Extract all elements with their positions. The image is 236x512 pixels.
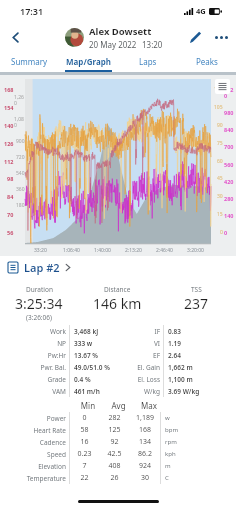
staticText: 1,189: [130, 413, 160, 423]
staticText: 900: [16, 138, 25, 145]
staticText: 180: [16, 202, 25, 209]
button[interactable]: More options: [208, 24, 234, 50]
staticText: 1:06:40: [63, 247, 80, 254]
staticText: 1,260: [14, 94, 25, 107]
staticText: 45: [217, 175, 223, 182]
staticText: 2:13:20: [125, 247, 142, 254]
staticText: 924: [130, 461, 160, 471]
button[interactable]: Peaks: [177, 52, 236, 70]
staticText: 168: [130, 425, 160, 435]
button[interactable]: Edit: [182, 24, 208, 50]
staticText: 0.23: [70, 449, 99, 459]
button[interactable]: Laps: [118, 52, 177, 70]
button[interactable]: Profile photo: [65, 28, 84, 47]
staticText: 134: [130, 437, 160, 447]
staticText: 980: [224, 109, 234, 116]
staticText: 140: [4, 122, 14, 129]
staticText: El. Gain: [118, 363, 160, 372]
staticText: 2:46:40: [156, 247, 173, 254]
staticText: 90: [217, 122, 223, 129]
staticText: 540: [16, 170, 25, 177]
staticText: 360: [16, 186, 25, 193]
staticText: Lap #2: [24, 260, 60, 275]
staticText: W/kg: [118, 387, 160, 396]
staticText: Distance: [104, 285, 131, 294]
staticText: 120: [214, 86, 223, 93]
staticText: Summary: [11, 56, 48, 67]
staticText: Pw:Hr: [0, 351, 66, 360]
button[interactable]: Map/Graph: [59, 52, 118, 70]
staticText: 461 m/h: [74, 387, 118, 396]
staticText: 1120: [224, 86, 236, 99]
button[interactable]: Back: [2, 24, 28, 50]
staticText: Heart Rate: [0, 426, 66, 435]
staticText: 140: [224, 212, 234, 219]
staticText: 7: [70, 461, 99, 471]
staticText: 49.0/51.0 %: [74, 363, 118, 372]
staticText: VAM: [0, 387, 66, 396]
staticText: 125: [99, 425, 130, 435]
staticText: Elevation: [0, 462, 66, 471]
staticText: 0: [220, 229, 223, 236]
staticText: 56: [7, 229, 14, 236]
staticText: 0.4 %: [74, 375, 118, 384]
staticText: 3:20:00: [187, 247, 204, 254]
staticText: Temperature: [0, 474, 66, 483]
staticText: 720: [16, 154, 25, 161]
staticText: 26: [99, 473, 130, 483]
staticText: 13.67 %: [74, 351, 118, 360]
staticText: Laps: [139, 56, 157, 67]
staticText: 30: [130, 473, 160, 483]
staticText: IF: [118, 327, 160, 336]
staticText: 333 w: [74, 339, 118, 348]
staticText: 560: [224, 161, 234, 168]
staticText: TSS: [191, 285, 202, 294]
button[interactable]: Lap #2: [0, 256, 236, 278]
staticText: Avg: [103, 400, 134, 411]
staticText: 126: [4, 140, 14, 147]
staticText: 105: [214, 104, 223, 111]
staticText: 0: [70, 413, 99, 423]
staticText: m: [165, 462, 171, 470]
staticText: 3,468 kJ: [74, 327, 118, 336]
staticText: 1.19: [168, 339, 236, 348]
button[interactable]: Chart series options: [215, 79, 230, 94]
staticText: 2.64: [168, 351, 236, 360]
staticText: 86.2: [130, 449, 160, 459]
staticText: 84: [7, 193, 14, 200]
staticText: EF: [118, 351, 160, 360]
staticText: Min: [73, 400, 103, 411]
staticText: 60: [217, 158, 223, 165]
staticText: 146 km: [93, 294, 142, 313]
staticText: 92: [99, 437, 130, 447]
staticText: C: [165, 474, 169, 482]
staticText: 33:20: [34, 247, 47, 254]
staticText: 3.69 W/kg: [168, 387, 236, 396]
staticText: 112: [4, 158, 14, 165]
staticText: 15: [217, 211, 223, 218]
staticText: 3:25:34: [15, 294, 63, 313]
staticText: kph: [165, 450, 176, 458]
staticText: 98: [7, 175, 14, 182]
staticText: rpm: [165, 438, 177, 446]
staticText: Max: [134, 400, 164, 411]
staticText: 282: [99, 413, 130, 423]
staticText: 20 May 2022: [89, 39, 137, 50]
staticText: 1:40:00: [94, 247, 111, 254]
staticText: 1,100 m: [168, 375, 236, 384]
staticText: Alex Dowsett: [89, 25, 152, 38]
staticText: 1,080: [14, 116, 25, 129]
staticText: El. Loss: [118, 375, 160, 384]
staticText: 75: [217, 140, 223, 147]
button[interactable]: Summary: [0, 52, 59, 70]
staticText: 408: [99, 461, 130, 471]
staticText: 420: [224, 178, 234, 185]
staticText: 1,662 m: [168, 363, 236, 372]
staticText: Cadence: [0, 438, 66, 447]
staticText: 154: [4, 104, 14, 111]
staticText: bpm: [165, 426, 178, 434]
staticText: Duration: [26, 285, 53, 294]
staticText: Peaks: [196, 56, 218, 67]
staticText: Map/Graph: [66, 56, 111, 67]
staticText: VI: [118, 339, 160, 348]
